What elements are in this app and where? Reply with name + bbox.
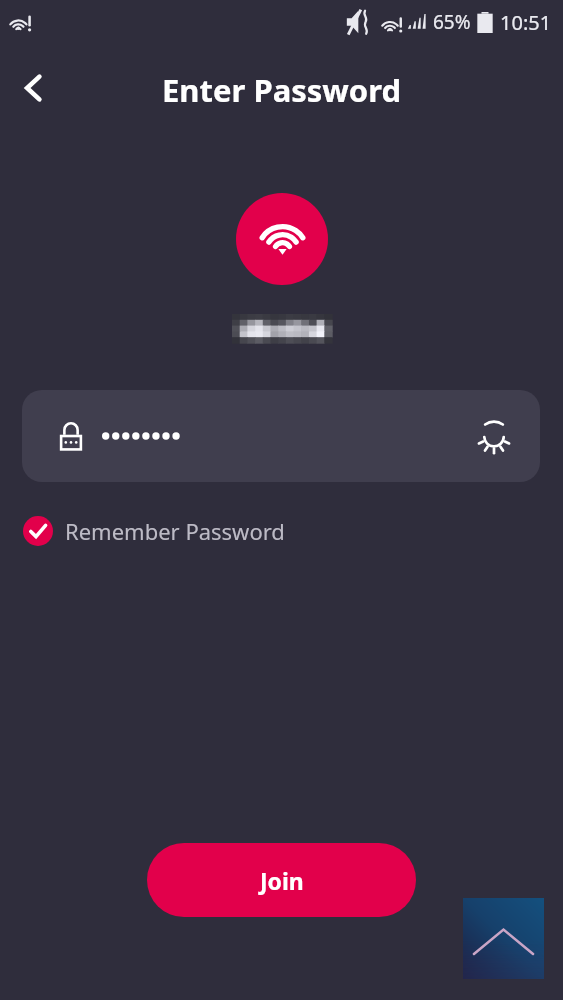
button[interactable]: Collapse overlay (463, 898, 544, 979)
staticText: Join (260, 865, 304, 896)
button[interactable]: Back (12, 66, 56, 110)
button[interactable]: Join (147, 843, 416, 917)
staticText: Enter Password (162, 69, 402, 111)
button[interactable]: Show password (22, 390, 540, 482)
button[interactable]: Show password (472, 414, 516, 458)
button[interactable]: Remember Password (23, 509, 291, 553)
staticText: Remember Password (65, 516, 285, 546)
staticText: 65% (433, 9, 471, 35)
staticText: 10:51 (500, 9, 552, 36)
